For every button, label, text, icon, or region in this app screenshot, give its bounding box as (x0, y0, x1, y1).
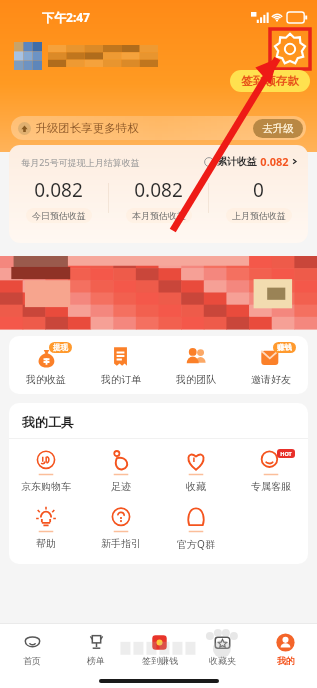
staticText: 签到赚钱 (142, 655, 178, 666)
button[interactable]: 新手指引 (83, 505, 158, 550)
staticText: 签到领存款 (241, 74, 299, 88)
button[interactable]: 榜单 (64, 624, 128, 674)
button[interactable]: 足迹 (83, 448, 158, 493)
button[interactable]: 赚钱 (233, 336, 308, 394)
button[interactable]: 0.082 (109, 177, 208, 223)
button[interactable]: 0.082 (9, 177, 108, 223)
staticText: 首页 (23, 655, 41, 666)
button[interactable]: 累计收益 (204, 154, 298, 169)
staticText: 每月25号可提现上月结算收益 (21, 156, 140, 168)
staticText: 京东购物车 (21, 480, 71, 493)
button[interactable]: 收藏 (158, 448, 233, 493)
button[interactable]: 我的 (254, 624, 317, 674)
button[interactable]: 签到赚钱 (128, 624, 191, 674)
staticText: 我的 (277, 655, 295, 666)
staticText: 邀请好友 (251, 373, 291, 386)
staticText: 我的收益 (26, 373, 66, 386)
button[interactable]: 我的团队 (158, 336, 233, 394)
button[interactable]: 我的订单 (83, 336, 158, 394)
staticText: 上月预估收益 (232, 210, 286, 221)
staticText: 累计收益 (217, 155, 257, 168)
staticText: 新手指引 (101, 537, 141, 550)
button[interactable] (0, 256, 317, 329)
staticText: 我的团队 (176, 373, 216, 386)
staticText: 收藏夹 (209, 655, 236, 666)
button[interactable]: 升级团长享更多特权 (11, 116, 306, 140)
button[interactable]: 去升级 (253, 119, 303, 138)
staticText: 0 (253, 177, 264, 203)
staticText: 0.082 (260, 154, 289, 169)
staticText: 榜单 (87, 655, 105, 666)
staticText: 今日预估收益 (32, 210, 86, 221)
staticText: 帮助 (36, 537, 56, 550)
staticText: 下午2:47 (42, 9, 90, 25)
staticText: 升级团长享更多特权 (35, 121, 139, 135)
staticText: 我的订单 (101, 373, 141, 386)
button[interactable]: 帮助 (9, 505, 83, 550)
button[interactable]: 官方Q群 (158, 505, 233, 551)
staticText: 提现 (53, 343, 68, 352)
staticText: 本月预估收益 (132, 210, 186, 221)
staticText: 去升级 (262, 122, 294, 135)
staticText: 专属客服 (251, 480, 291, 493)
staticText: HOT (280, 450, 292, 457)
staticText: 赚钱 (277, 343, 292, 352)
staticText: 官方Q群 (177, 537, 215, 551)
button[interactable]: HOT (233, 448, 308, 493)
staticText: 足迹 (111, 480, 131, 493)
button[interactable]: 首页 (0, 624, 64, 674)
button[interactable]: Settings (269, 28, 311, 70)
button[interactable]: 收藏夹 (191, 624, 254, 674)
button[interactable]: 签到领存款 (230, 70, 310, 92)
button[interactable]: 京东购物车 (9, 448, 83, 493)
staticText: 收藏 (186, 480, 206, 493)
button[interactable]: 提现 (9, 336, 83, 394)
staticText: 0.082 (34, 177, 83, 203)
staticText: 0.082 (134, 177, 183, 203)
button[interactable]: 0 (209, 177, 308, 223)
staticText: 我的工具 (22, 414, 74, 430)
